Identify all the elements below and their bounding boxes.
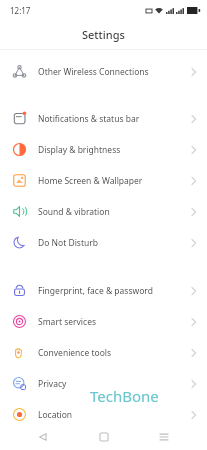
button[interactable]: Notifications & status bar: [0, 103, 207, 134]
button[interactable]: Home Screen & Wallpaper: [0, 165, 207, 196]
button[interactable]: Privacy: [0, 368, 207, 399]
button[interactable]: Smart services: [0, 306, 207, 337]
button[interactable]: Convenience tools: [0, 337, 207, 368]
staticText: Convenience tools: [38, 347, 112, 359]
staticText: Smart services: [38, 316, 97, 328]
button[interactable]: Fingerprint, face & password: [0, 275, 207, 306]
staticText: Home Screen & Wallpaper: [38, 175, 143, 187]
button[interactable]: Recent apps: [147, 424, 181, 450]
staticText: 12:17: [10, 5, 31, 16]
staticText: Other Wireless Connections: [38, 66, 149, 78]
staticText: Notifications & status bar: [38, 113, 140, 125]
button[interactable]: Location: [0, 399, 207, 430]
button[interactable]: Sound & vibration: [0, 196, 207, 227]
button[interactable]: Home: [87, 424, 121, 450]
staticText: Sound & vibration: [38, 206, 110, 218]
staticText: Privacy: [38, 378, 67, 390]
button[interactable]: Back: [26, 424, 60, 450]
button[interactable]: Do Not Disturb: [0, 227, 207, 258]
staticText: Do Not Disturb: [38, 237, 98, 249]
button[interactable]: Other Wireless Connections: [0, 56, 207, 87]
staticText: TechBone: [90, 386, 159, 406]
button[interactable]: Display & brightness: [0, 134, 207, 165]
staticText: Settings: [82, 27, 125, 42]
staticText: Fingerprint, face & password: [38, 285, 153, 297]
staticText: Display & brightness: [38, 144, 121, 156]
staticText: Location: [38, 409, 73, 421]
